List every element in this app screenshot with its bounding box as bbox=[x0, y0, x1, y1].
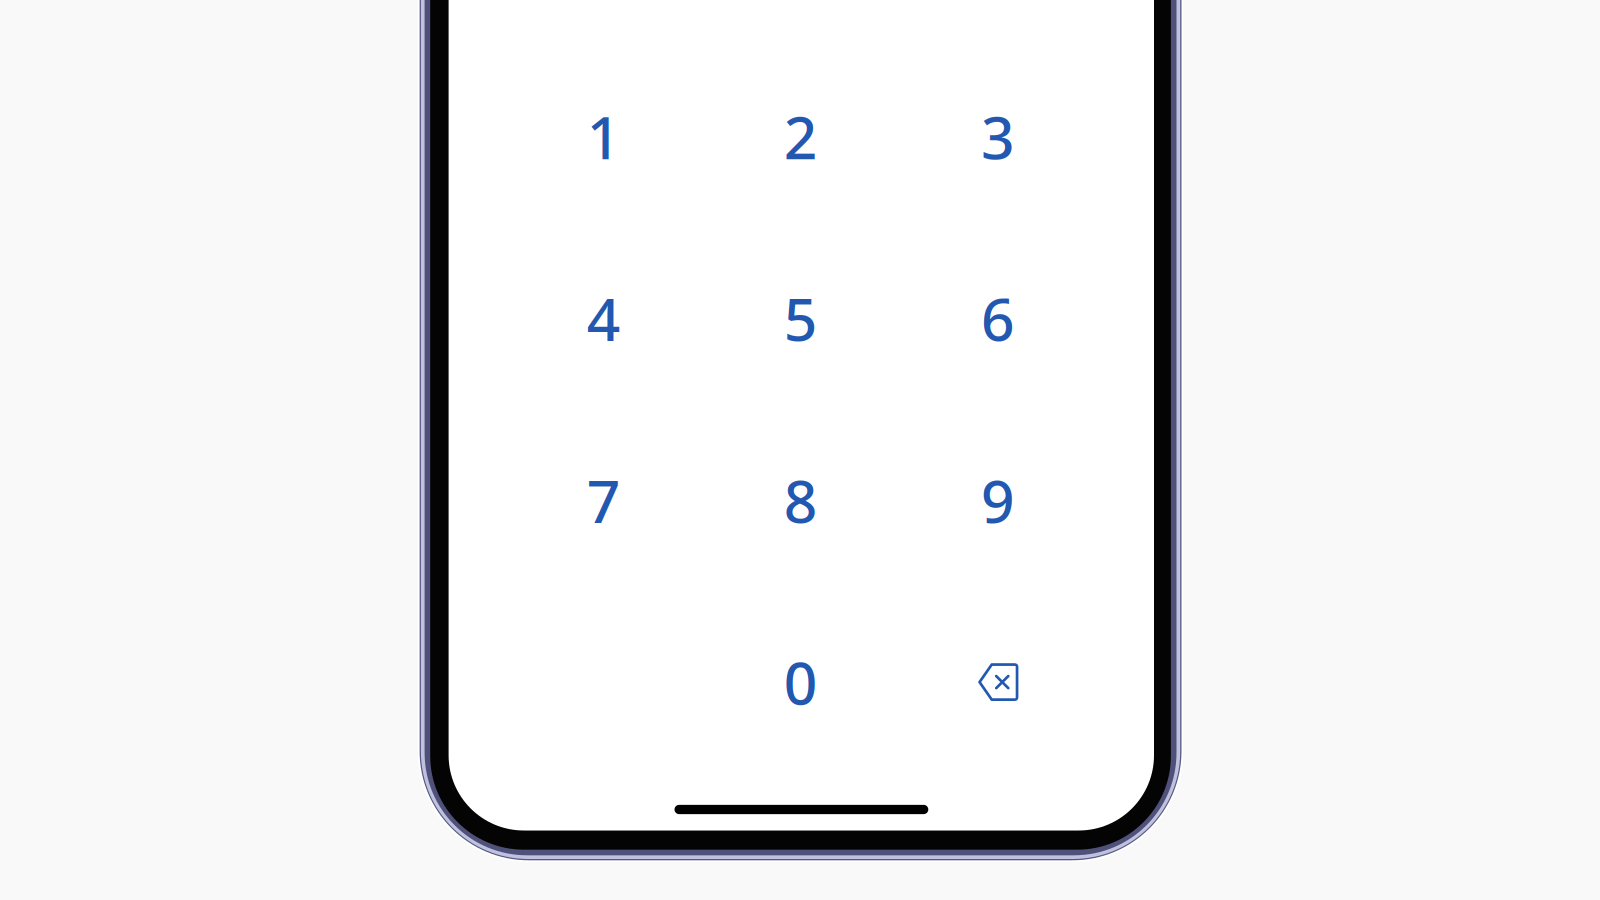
staticText: 1 bbox=[587, 97, 621, 175]
staticText: 8 bbox=[784, 461, 818, 539]
staticText: 7 bbox=[587, 461, 621, 539]
staticText: 3 bbox=[981, 97, 1015, 175]
button[interactable]: 5 bbox=[711, 236, 891, 400]
button[interactable]: 8 bbox=[711, 418, 891, 582]
button[interactable]: 3 bbox=[908, 54, 1088, 218]
staticText: 5 bbox=[784, 279, 818, 357]
button[interactable]: 1 bbox=[514, 54, 694, 218]
button[interactable]: 4 bbox=[514, 236, 694, 400]
staticText: 2 bbox=[784, 97, 818, 175]
button[interactable]: Delete bbox=[908, 600, 1088, 764]
button[interactable]: 0 bbox=[711, 600, 891, 764]
staticText: 0 bbox=[784, 643, 818, 721]
staticText: 4 bbox=[587, 279, 621, 357]
button[interactable]: 2 bbox=[711, 54, 891, 218]
button[interactable]: 6 bbox=[908, 236, 1088, 400]
button[interactable]: 7 bbox=[514, 418, 694, 582]
staticText: 9 bbox=[981, 461, 1015, 539]
staticText: 6 bbox=[981, 279, 1015, 357]
button[interactable]: 9 bbox=[908, 418, 1088, 582]
